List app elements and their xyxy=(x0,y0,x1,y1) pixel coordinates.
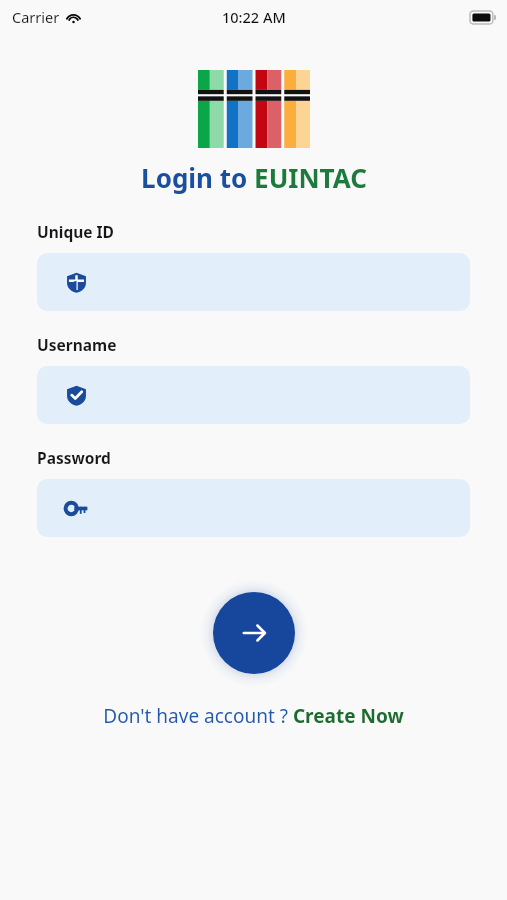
staticText: Password xyxy=(37,447,111,468)
button[interactable] xyxy=(37,366,470,424)
staticText: Unique ID xyxy=(37,221,114,242)
staticText: Carrier xyxy=(12,7,60,27)
staticText: Username xyxy=(37,334,117,355)
staticText: Don't have account ? Create Now xyxy=(103,703,404,729)
button[interactable]: Don't have account ? Create Now xyxy=(95,699,412,733)
button[interactable]: Login xyxy=(213,592,295,674)
staticText: 10:22 AM xyxy=(222,7,286,27)
button[interactable] xyxy=(37,479,470,537)
button[interactable] xyxy=(37,253,470,311)
staticText: Login to EUINTAC xyxy=(141,160,367,195)
